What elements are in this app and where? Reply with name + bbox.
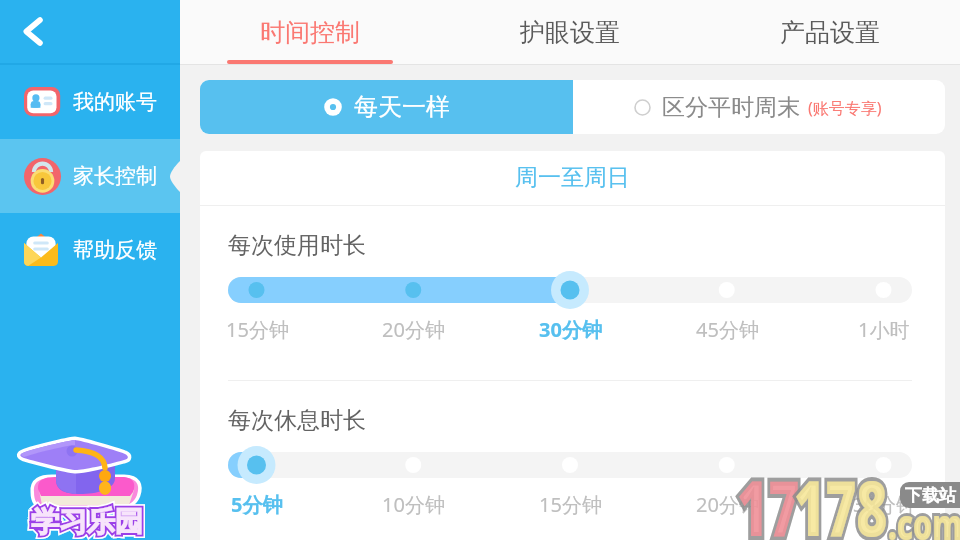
staticText: 下载站 [905, 485, 956, 506]
staticText: 20分钟 [382, 316, 445, 343]
staticText: 20分钟 [696, 491, 759, 518]
staticText: 每次使用时长 [228, 231, 366, 260]
button[interactable]: 家长控制 [0, 139, 180, 213]
staticText: 时间控制 [260, 17, 360, 48]
button[interactable]: Back [4, 6, 56, 58]
staticText: 家长控制 [73, 163, 157, 189]
staticText: 17 [737, 455, 800, 540]
staticText: .com [888, 495, 960, 540]
staticText: 每天一样 [354, 92, 450, 122]
staticText: (账号专享) [808, 97, 882, 119]
button[interactable]: 时间控制 [180, 0, 440, 65]
staticText: 30分钟 [539, 316, 602, 343]
staticText: 区分平时周末 [662, 93, 800, 122]
staticText: 学习乐园 [31, 504, 143, 539]
staticText: 1小时 [858, 316, 910, 343]
button[interactable]: 每天一样 [200, 80, 573, 134]
button[interactable]: 护眼设置 [440, 0, 700, 65]
staticText: 我的账号 [73, 89, 157, 115]
staticText: 护眼设置 [520, 17, 620, 48]
staticText: 5分钟 [231, 491, 283, 518]
staticText: 178 [794, 455, 888, 540]
staticText: 45分钟 [696, 316, 759, 343]
staticText: .com [888, 495, 960, 540]
staticText: 每次休息时长 [228, 406, 366, 435]
staticText: 17 [737, 455, 800, 540]
button[interactable]: 帮助反馈 [0, 213, 180, 287]
staticText: 15分钟 [226, 316, 289, 343]
staticText: 周一至周日 [515, 163, 630, 192]
staticText: 10分钟 [382, 491, 445, 518]
staticText: 帮助反馈 [73, 237, 157, 263]
button[interactable]: 我的账号 [0, 65, 180, 139]
staticText: 15分钟 [539, 491, 602, 518]
staticText: 178 [794, 455, 888, 540]
button[interactable]: 产品设置 [700, 0, 960, 65]
button[interactable]: 区分平时周末 [573, 80, 945, 134]
staticText: 学习乐园 [31, 504, 143, 539]
staticText: 30分钟 [853, 491, 916, 518]
staticText: 学习乐园 [31, 504, 143, 539]
staticText: 产品设置 [780, 17, 880, 48]
